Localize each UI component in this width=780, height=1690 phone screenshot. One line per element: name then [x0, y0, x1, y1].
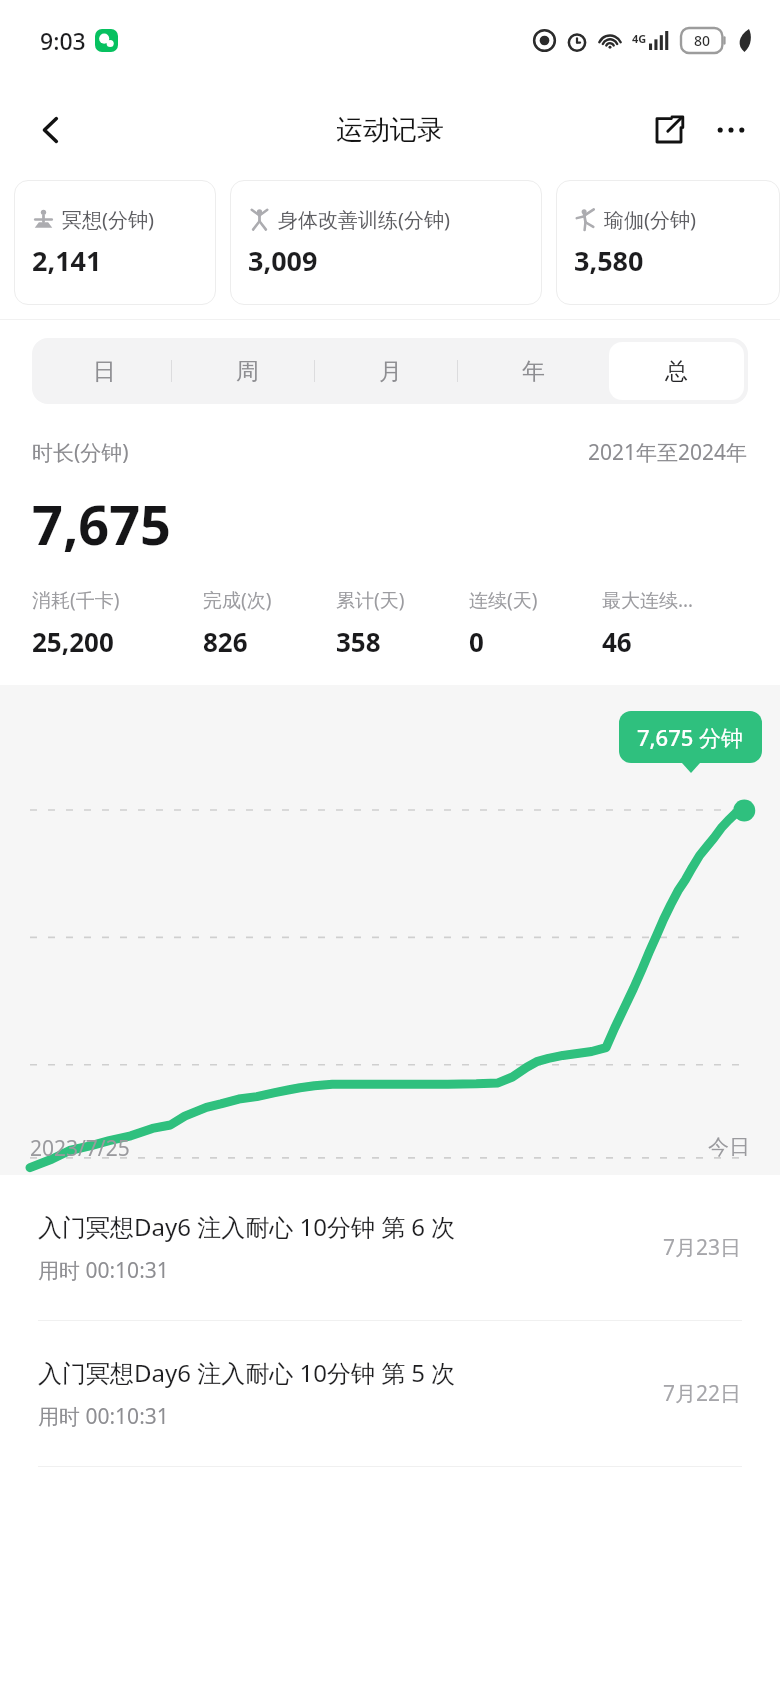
staticText: 周	[236, 357, 259, 386]
staticText: 最大连续…	[602, 587, 694, 613]
staticText: 瑜伽(分钟)	[604, 206, 696, 233]
staticText: 身体改善训练(分钟)	[278, 206, 450, 233]
staticText: 3,009	[248, 242, 318, 279]
staticText: 46	[602, 624, 632, 659]
staticText: 2021年至2024年	[588, 438, 748, 467]
button[interactable]: Share	[638, 99, 700, 161]
staticText: 运动记录	[336, 113, 444, 147]
button[interactable]: 月	[323, 342, 458, 400]
staticText: 累计(天)	[336, 587, 405, 613]
staticText: 7,675	[32, 487, 171, 561]
staticText: 7,675 分钟	[637, 722, 744, 752]
staticText: 2,141	[32, 242, 102, 279]
staticText: 9:03	[40, 25, 86, 56]
staticText: 2023/7/25	[30, 1134, 130, 1163]
button[interactable]: 身体改善训练(分钟)	[230, 180, 542, 305]
staticText: 25,200	[32, 624, 114, 659]
staticText: 7月23日	[663, 1233, 742, 1262]
button[interactable]: 日	[36, 342, 172, 400]
staticText: 年	[522, 357, 545, 386]
button[interactable]: 周	[180, 342, 315, 400]
button[interactable]: 入门冥想Day6 注入耐心 10分钟 第 6 次	[0, 1175, 780, 1320]
staticText: 总	[665, 357, 688, 386]
staticText: 冥想(分钟)	[62, 206, 154, 233]
button[interactable]: 冥想(分钟)	[14, 180, 216, 305]
button[interactable]: 瑜伽(分钟)	[556, 180, 780, 305]
staticText: 消耗(千卡)	[32, 587, 120, 613]
staticText: 日	[93, 357, 116, 386]
staticText: 3,580	[574, 242, 644, 279]
staticText: 今日	[708, 1134, 750, 1160]
staticText: 0	[469, 624, 484, 659]
staticText: 358	[336, 624, 381, 659]
staticText: 826	[203, 624, 248, 659]
staticText: 4G	[632, 31, 647, 46]
staticText: 时长(分钟)	[32, 438, 129, 467]
staticText: 入门冥想Day6 注入耐心 10分钟 第 6 次	[38, 1210, 456, 1243]
button[interactable]: 入门冥想Day6 注入耐心 10分钟 第 5 次	[0, 1321, 780, 1466]
button[interactable]: 总	[609, 342, 744, 400]
staticText: 入门冥想Day6 注入耐心 10分钟 第 5 次	[38, 1356, 456, 1389]
staticText: 7月22日	[663, 1379, 742, 1408]
button[interactable]: Back	[22, 101, 80, 159]
staticText: 用时 00:10:31	[38, 1402, 169, 1431]
staticText: 80	[694, 31, 711, 50]
staticText: 连续(天)	[469, 587, 538, 613]
button[interactable]: More options	[700, 99, 762, 161]
staticText: 用时 00:10:31	[38, 1256, 169, 1285]
button[interactable]: 年	[466, 342, 601, 400]
staticText: 完成(次)	[203, 587, 272, 613]
staticText: 月	[379, 357, 402, 386]
